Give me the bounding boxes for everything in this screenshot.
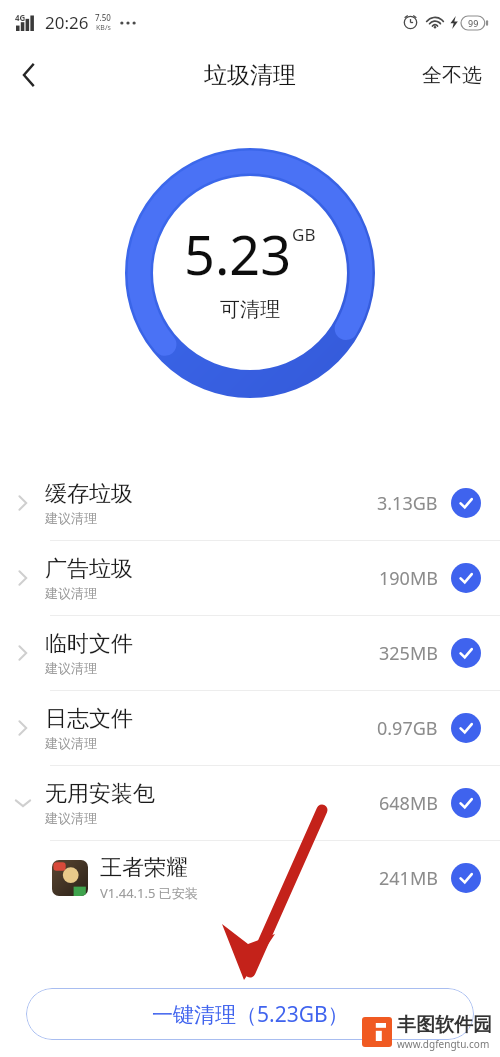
button[interactable]: 临时文件 <box>0 616 500 690</box>
button[interactable]: 王者荣耀 <box>0 841 500 915</box>
button[interactable]: 一键清理（5.23GB） <box>26 988 474 1040</box>
staticText: 建议清理 <box>45 810 97 826</box>
button[interactable]: Selected <box>451 563 481 593</box>
staticText: 7.50 <box>95 12 111 23</box>
staticText: 3.13GB <box>377 491 438 516</box>
staticText: 建议清理 <box>45 735 97 751</box>
staticText: 241MB <box>379 866 438 891</box>
staticText: 缓存垃圾 <box>45 480 133 508</box>
button[interactable]: Back <box>0 46 58 104</box>
button[interactable]: Selected <box>451 638 481 668</box>
button[interactable]: 无用安装包 <box>0 766 500 840</box>
staticText: 全不选 <box>422 63 482 88</box>
staticText: GB <box>292 223 316 246</box>
staticText: 5.23 <box>184 217 292 291</box>
staticText: 可清理 <box>220 297 280 322</box>
staticText: 王者荣耀 <box>100 854 188 882</box>
staticText: 325MB <box>379 641 438 666</box>
staticText: 广告垃圾 <box>45 555 133 583</box>
staticText: 20:26 <box>45 11 89 34</box>
staticText: 垃圾清理 <box>204 61 296 90</box>
staticText: KB/s <box>96 23 111 33</box>
button[interactable]: 广告垃圾 <box>0 541 500 615</box>
staticText: 无用安装包 <box>45 780 155 808</box>
button[interactable]: 全不选 <box>404 53 500 98</box>
staticText: 一键清理（5.23GB） <box>152 1000 349 1029</box>
staticText: 丰图软件园 <box>397 1013 492 1037</box>
staticText: 0.97GB <box>377 716 438 741</box>
button[interactable]: 日志文件 <box>0 691 500 765</box>
staticText: 建议清理 <box>45 585 97 601</box>
staticText: 日志文件 <box>45 705 133 733</box>
staticText: www.dgfengtu.com <box>397 1037 490 1051</box>
staticText: 建议清理 <box>45 660 97 676</box>
button[interactable]: Selected <box>451 713 481 743</box>
staticText: 99 <box>468 17 479 29</box>
staticText: V1.44.1.5 已安装 <box>100 884 198 902</box>
button[interactable]: Selected <box>451 863 481 893</box>
button[interactable]: Selected <box>451 488 481 518</box>
button[interactable]: 缓存垃圾 <box>0 466 500 540</box>
staticText: 648MB <box>379 791 438 816</box>
button[interactable]: Selected <box>451 788 481 818</box>
staticText: 临时文件 <box>45 630 133 658</box>
staticText: 建议清理 <box>45 510 97 526</box>
staticText: 4G <box>15 12 26 23</box>
staticText: 190MB <box>379 566 438 591</box>
